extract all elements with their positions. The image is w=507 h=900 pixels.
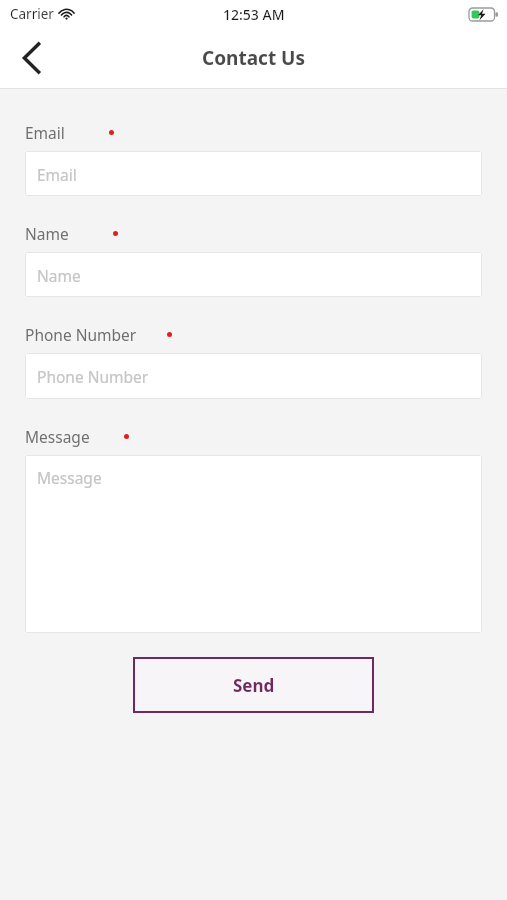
staticText: Phone Number bbox=[37, 366, 149, 387]
button[interactable]: Message bbox=[25, 455, 482, 633]
button[interactable]: Send bbox=[133, 657, 374, 713]
staticText: Email bbox=[37, 164, 77, 185]
button[interactable]: Name bbox=[25, 252, 482, 297]
staticText: Message bbox=[25, 426, 90, 447]
staticText: 12:53 AM bbox=[223, 5, 285, 24]
staticText: Send bbox=[233, 674, 275, 697]
staticText: Message bbox=[37, 467, 102, 488]
button[interactable]: Phone Number bbox=[25, 353, 482, 399]
staticText: Carrier bbox=[10, 5, 54, 23]
staticText: Contact Us bbox=[202, 45, 305, 71]
staticText: Email bbox=[25, 122, 65, 143]
staticText: Name bbox=[25, 223, 69, 244]
staticText: Name bbox=[37, 265, 81, 286]
button[interactable]: Email bbox=[25, 151, 482, 196]
staticText: Phone Number bbox=[25, 324, 137, 345]
button[interactable]: Back bbox=[0, 28, 62, 88]
